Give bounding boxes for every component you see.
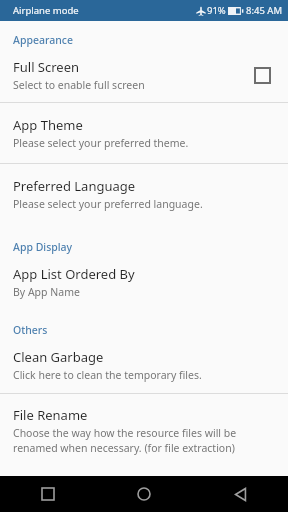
button[interactable]: Recent apps bbox=[0, 476, 96, 512]
staticText: Clean Garbage bbox=[13, 348, 104, 366]
button[interactable]: Clean Garbage bbox=[0, 343, 288, 393]
button[interactable]: Full screen checkbox bbox=[249, 62, 275, 88]
staticText: Preferred Language bbox=[13, 177, 136, 195]
button[interactable]: File Rename bbox=[0, 394, 288, 467]
staticText: Click here to clean the temporary files. bbox=[13, 368, 202, 382]
staticText: App List Ordered By bbox=[13, 265, 135, 283]
staticText: Airplane mode bbox=[13, 4, 79, 17]
staticText: Choose the way how the resource files wi… bbox=[13, 426, 237, 440]
button[interactable]: Full Screen bbox=[0, 53, 288, 102]
button[interactable]: Back bbox=[192, 476, 288, 512]
staticText: Full Screen bbox=[13, 58, 80, 76]
button[interactable]: App Theme bbox=[0, 103, 288, 163]
button[interactable]: Preferred Language bbox=[0, 164, 288, 224]
staticText: 8:45 AM bbox=[246, 4, 283, 17]
staticText: Select to enable full screen bbox=[13, 78, 145, 92]
staticText: By App Name bbox=[13, 285, 80, 299]
staticText: App Display bbox=[13, 240, 288, 254]
staticText: Please select your preferred theme. bbox=[13, 136, 189, 150]
button[interactable]: Home bbox=[96, 476, 192, 512]
staticText: Please select your preferred language. bbox=[13, 197, 203, 211]
staticText: renamed when necessary. (for file extrac… bbox=[13, 441, 235, 455]
staticText: Appearance bbox=[13, 33, 288, 47]
staticText: App Theme bbox=[13, 116, 83, 134]
staticText: Others bbox=[13, 323, 288, 337]
button[interactable]: App List Ordered By bbox=[0, 260, 288, 309]
staticText: 91% bbox=[207, 4, 226, 17]
staticText: File Rename bbox=[13, 406, 88, 424]
